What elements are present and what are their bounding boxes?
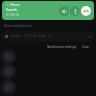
button[interactable]: Google · 13:14 Thursday, 14 — [2, 31, 94, 42]
button[interactable]: Speaker — [59, 6, 69, 16]
button[interactable]: Mute — [70, 6, 80, 16]
button[interactable]: Clear — [81, 45, 91, 49]
staticText: Google · 13:14 Thursday, 14 — [10, 34, 52, 38]
button[interactable]: Phone — [2, 1, 94, 20]
button[interactable]: Notification settings — [46, 45, 78, 49]
staticText: Phone — [10, 2, 20, 6]
staticText: Sarah — [6, 7, 17, 13]
staticText: Silent notifications — [4, 24, 32, 28]
button[interactable]: End call — [81, 6, 91, 16]
staticText: 01:06:14 — [6, 12, 20, 16]
